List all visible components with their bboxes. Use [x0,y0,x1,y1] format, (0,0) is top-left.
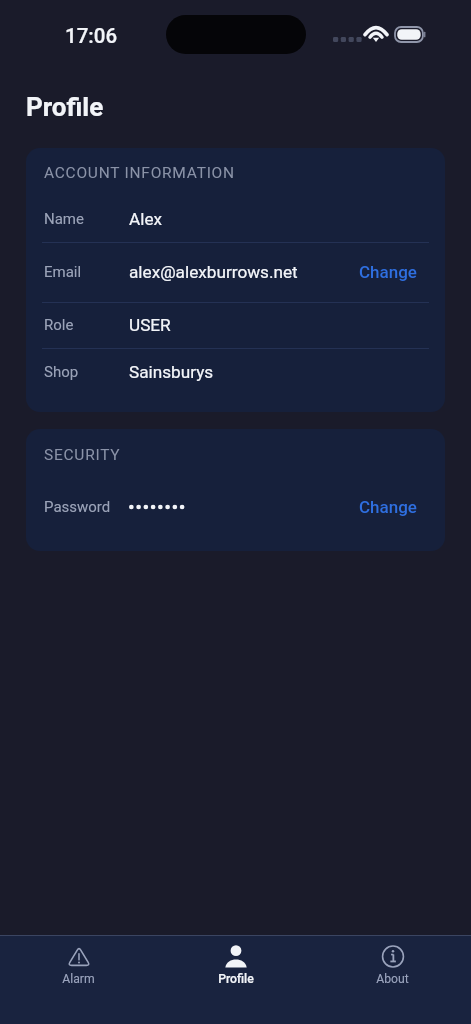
button[interactable]: Password [26,484,445,530]
staticText: Profile [26,92,104,122]
staticText: SECURITY [44,446,121,464]
staticText: Email [44,263,129,281]
button[interactable]: Name [26,196,445,242]
staticText: Name [44,210,129,228]
button[interactable]: Alarm [0,936,157,1024]
staticText: USER [129,315,421,335]
button[interactable]: Profile [157,936,314,1024]
staticText: Alarm [62,972,95,986]
staticText: About [376,972,409,986]
staticText: Alex [129,209,421,229]
staticText: Profile [218,972,254,986]
staticText: Shop [44,363,129,381]
button[interactable]: Role [26,302,445,348]
button[interactable]: Change [355,494,421,520]
staticText: Role [44,316,129,334]
button[interactable]: Email [26,249,445,295]
staticText: 17:06 [65,24,118,48]
staticText: Password [44,498,129,516]
button[interactable]: Shop [26,349,445,395]
button[interactable]: About [314,936,471,1024]
staticText: ACCOUNT INFORMATION [44,164,235,182]
button[interactable]: Change [355,259,421,285]
staticText: alex@alexburrows.net [129,262,355,282]
staticText: Sainsburys [129,362,421,382]
